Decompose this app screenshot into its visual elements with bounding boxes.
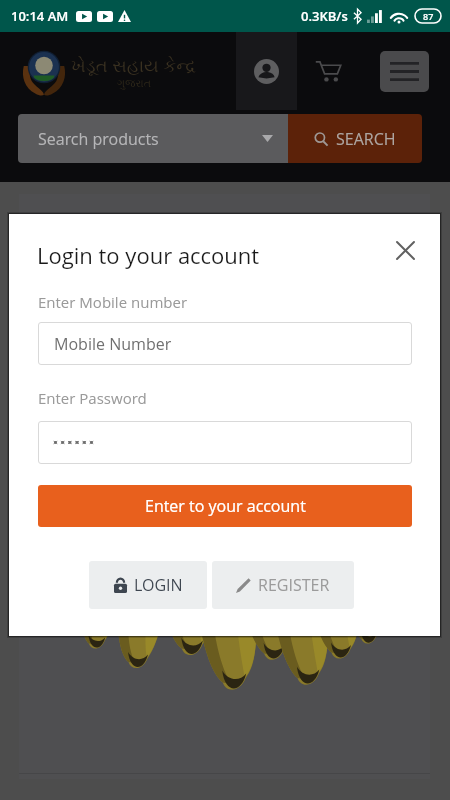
staticText: Enter Mobile number	[38, 292, 188, 312]
button[interactable]	[38, 421, 412, 464]
staticText: Enter to your account	[145, 495, 306, 517]
staticText: Enter Password	[38, 388, 147, 408]
button[interactable]: Shopping cart	[297, 32, 359, 110]
button[interactable]: Close	[385, 230, 425, 270]
staticText: Mobile Number	[54, 333, 172, 355]
button[interactable]: LOGIN	[89, 561, 207, 609]
staticText: SEARCH	[336, 128, 396, 150]
staticText: Login to your account	[37, 240, 260, 270]
button[interactable]: Enter to your account	[38, 485, 412, 527]
button[interactable]: REGISTER	[212, 561, 354, 609]
staticText: LOGIN	[134, 574, 183, 596]
button[interactable]: ખેડૂત સહાય કેન્દ્ર	[0, 32, 236, 110]
button[interactable]: Account	[236, 32, 297, 110]
button[interactable]: Mobile Number	[38, 322, 412, 365]
button[interactable]: SEARCH	[288, 114, 422, 163]
staticText: ગુજરાત	[117, 78, 152, 89]
staticText: 0.3KB/s	[301, 7, 348, 25]
button[interactable]: Menu	[359, 32, 450, 110]
staticText: 10:14 AM	[11, 7, 69, 25]
button[interactable]: Search products	[18, 114, 288, 163]
staticText: REGISTER	[258, 574, 330, 596]
staticText: Search products	[38, 128, 159, 150]
staticText: ખેડૂત સહાય કેન્દ્ર	[71, 53, 196, 78]
staticText: 87	[423, 10, 434, 22]
